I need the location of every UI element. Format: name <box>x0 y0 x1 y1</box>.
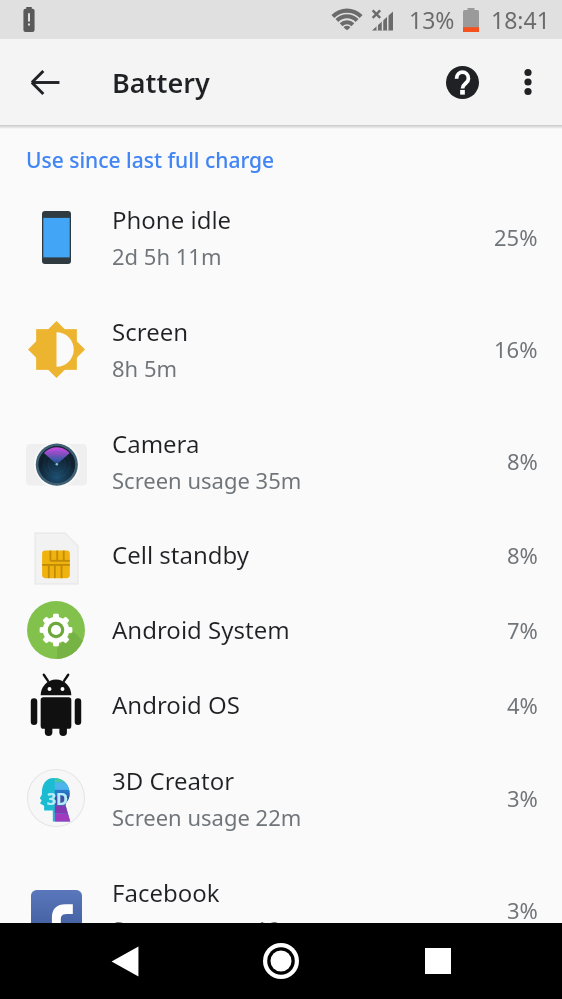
staticText: 3D <box>47 788 68 810</box>
staticText: 2d 5h 11m <box>112 241 222 271</box>
button[interactable]: Recent apps <box>406 929 470 993</box>
button[interactable]: Home <box>249 929 313 993</box>
staticText: 3D Creator <box>112 764 235 797</box>
button[interactable]: Camera <box>0 405 562 517</box>
staticText: Phone idle <box>112 203 232 236</box>
button[interactable]: Help <box>436 56 488 108</box>
staticText: 25% <box>494 222 538 252</box>
button[interactable]: More options <box>502 56 554 108</box>
staticText: Screen usage 35m <box>112 465 302 495</box>
staticText: 8% <box>507 540 538 570</box>
staticText: Android System <box>112 613 290 646</box>
button[interactable]: Navigate up <box>17 54 73 110</box>
staticText: Screen <box>112 315 189 348</box>
staticText: 8% <box>507 446 538 476</box>
staticText: Use since last full charge <box>26 146 275 175</box>
button[interactable]: Android OS <box>0 667 562 742</box>
staticText: 13% <box>409 4 455 35</box>
staticText: 18:41 <box>491 4 550 35</box>
staticText: 7% <box>507 615 538 645</box>
button[interactable]: Facebook <box>0 854 562 966</box>
staticText: 3% <box>507 895 538 925</box>
staticText: Android OS <box>112 688 240 721</box>
staticText: Battery <box>112 64 210 101</box>
staticText: 4% <box>507 690 538 720</box>
staticText: Screen usage 22m <box>112 802 302 832</box>
button[interactable]: Phone idle <box>0 181 562 293</box>
staticText: Facebook <box>112 876 220 909</box>
staticText: 8h 5m <box>112 353 178 383</box>
button[interactable]: Screen <box>0 293 562 405</box>
staticText: Camera <box>112 427 200 460</box>
button[interactable]: Back <box>93 929 157 993</box>
staticText: 3% <box>507 783 538 813</box>
button[interactable]: Cell standby <box>0 517 562 592</box>
button[interactable]: 3D <box>0 742 562 854</box>
staticText: 16% <box>494 334 538 364</box>
button[interactable]: Android System <box>0 592 562 667</box>
staticText: Screen usage 12m <box>112 914 302 944</box>
staticText: Cell standby <box>112 538 250 571</box>
